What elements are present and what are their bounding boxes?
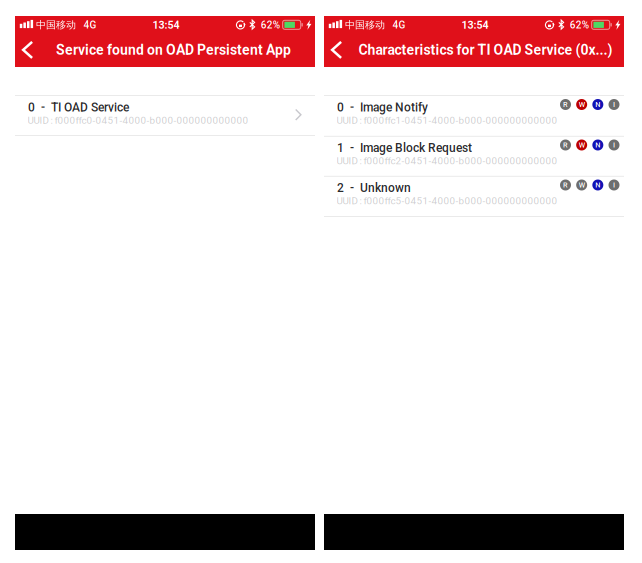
staticText: Service found on OAD Persistent App xyxy=(56,42,291,58)
staticText: I xyxy=(613,100,615,109)
staticText: I xyxy=(613,141,615,149)
staticText: 4G xyxy=(392,19,405,31)
staticText: UUID : f000ffc2-0451-4000-b000-000000000… xyxy=(336,155,557,167)
staticText: 4G xyxy=(83,19,96,31)
staticText: UUID : f000ffc0-0451-4000-b000-000000000… xyxy=(27,115,248,126)
staticText: R xyxy=(563,181,568,189)
staticText: UUID : f000ffc1-0451-4000-b000-000000000… xyxy=(336,115,557,126)
staticText: 13:54 xyxy=(461,19,488,31)
staticText: N xyxy=(595,181,600,189)
staticText: 1 - Image Block Request xyxy=(337,141,472,155)
staticText: N xyxy=(595,141,600,149)
staticText: 0 - TI OAD Service xyxy=(28,100,129,115)
staticText: R xyxy=(563,100,568,109)
staticText: W xyxy=(579,141,585,149)
staticText: 2 - Unknown xyxy=(337,181,411,195)
staticText: I xyxy=(613,181,615,189)
staticText: R xyxy=(563,141,568,149)
staticText: UUID : f000ffc5-0451-4000-b000-000000000… xyxy=(336,195,557,207)
button[interactable]: 1 - Image Block Request xyxy=(324,136,624,176)
button[interactable]: 0 - Image Notify xyxy=(324,95,624,135)
button[interactable]: 2 - Unknown xyxy=(324,176,624,216)
button[interactable]: 0 - TI OAD Service xyxy=(15,95,315,135)
staticText: 中国移动 xyxy=(36,19,76,31)
staticText: N xyxy=(595,100,600,109)
button[interactable]: Back xyxy=(15,33,41,67)
button[interactable]: Back xyxy=(324,33,350,67)
staticText: 62% xyxy=(570,19,589,31)
staticText: Characteristics for TI OAD Service (0x..… xyxy=(358,42,612,58)
staticText: 13:54 xyxy=(152,19,179,31)
staticText: 0 - Image Notify xyxy=(337,100,428,115)
staticText: 62% xyxy=(261,19,280,31)
staticText: 中国移动 xyxy=(345,19,385,31)
staticText: W xyxy=(579,100,585,109)
staticText: W xyxy=(579,181,585,189)
